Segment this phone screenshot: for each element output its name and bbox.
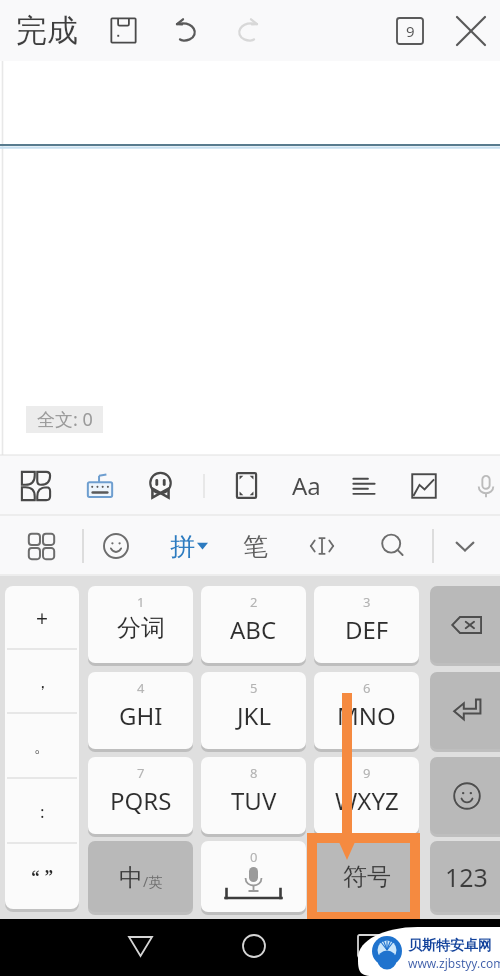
button[interactable]: 2	[201, 586, 306, 663]
button[interactable]: Redo	[226, 0, 270, 61]
button[interactable]: 4	[88, 672, 193, 749]
button[interactable]: Align	[342, 455, 386, 516]
staticText: 123	[445, 860, 488, 894]
button[interactable]: Emoji	[430, 757, 500, 834]
button[interactable]: 中	[88, 841, 193, 912]
button[interactable]: 6	[314, 672, 419, 749]
button[interactable]: 全文: 0	[26, 406, 103, 433]
staticText: 6	[363, 679, 371, 697]
button[interactable]: 符号	[314, 841, 419, 912]
button[interactable]: 。	[5, 714, 79, 779]
staticText: PQRS	[110, 784, 172, 817]
staticText: 符号	[343, 862, 391, 892]
staticText: 中	[119, 863, 143, 893]
staticText: 分词	[117, 613, 165, 643]
staticText: ABC	[230, 613, 277, 646]
staticText: www.zjbstyy.com	[408, 955, 500, 971]
button[interactable]: 7	[88, 757, 193, 834]
button[interactable]: 笔	[238, 516, 272, 576]
staticText: 贝斯特安卓网	[408, 937, 492, 955]
staticText: +	[36, 604, 49, 633]
staticText: 3	[363, 593, 371, 611]
button[interactable]: 123	[430, 841, 500, 912]
button[interactable]: Panel	[19, 516, 63, 576]
button[interactable]: 1	[88, 586, 193, 663]
button[interactable]: Font	[286, 455, 326, 516]
button[interactable]: Word count	[388, 0, 432, 61]
staticText: TUV	[231, 784, 277, 817]
button[interactable]: Undo	[164, 0, 208, 61]
staticText: 笔	[243, 531, 268, 562]
button[interactable]: Space	[201, 841, 306, 912]
button[interactable]: 8	[201, 757, 306, 834]
staticText: 9	[363, 764, 371, 782]
button[interactable]: 3	[314, 586, 419, 663]
staticText: WXYZ	[335, 784, 399, 817]
staticText: ，	[34, 672, 51, 693]
button[interactable]: Hide keyboard	[443, 516, 487, 576]
staticText: 2	[250, 593, 258, 611]
button[interactable]: 5	[201, 672, 306, 749]
button[interactable]: Home	[232, 924, 276, 968]
staticText: GHI	[119, 699, 163, 732]
button[interactable]: Emoji	[94, 516, 138, 576]
staticText: 5	[250, 679, 258, 697]
button[interactable]: Keyboard	[78, 455, 122, 516]
button[interactable]: Save	[101, 0, 145, 61]
button[interactable]: Enter	[430, 672, 500, 749]
button[interactable]: :	[5, 779, 79, 844]
staticText: :	[40, 800, 45, 823]
button[interactable]: Apps	[14, 455, 58, 516]
staticText: /英	[143, 872, 163, 891]
staticText: Aa	[292, 469, 321, 502]
staticText: 9	[406, 21, 415, 41]
staticText: 8	[250, 764, 258, 782]
button[interactable]: Search	[371, 516, 415, 576]
button[interactable]: 9	[314, 757, 419, 834]
staticText: 7	[137, 764, 145, 782]
button[interactable]: Close	[449, 0, 493, 61]
button[interactable]: Backspace	[430, 586, 500, 663]
staticText: JKL	[237, 699, 271, 732]
button[interactable]: Cursor move	[300, 516, 344, 576]
staticText: 完成	[16, 11, 78, 50]
button[interactable]: “ ”	[5, 844, 79, 909]
button[interactable]: Voice	[464, 455, 500, 516]
staticText: MNO	[337, 699, 396, 732]
button[interactable]: Emoticon	[138, 455, 182, 516]
button[interactable]: 拼	[170, 516, 208, 576]
staticText: DEF	[345, 613, 389, 646]
button[interactable]: Image	[402, 455, 446, 516]
staticText: 拼	[170, 531, 195, 562]
button[interactable]: Back	[118, 924, 162, 968]
staticText: 全文: 0	[37, 407, 93, 432]
button[interactable]: ，	[5, 650, 79, 714]
staticText: 4	[137, 679, 145, 697]
staticText: 0	[250, 848, 258, 866]
button[interactable]: +	[5, 586, 79, 650]
staticText: “ ”	[31, 864, 54, 889]
staticText: 1	[137, 593, 145, 611]
button[interactable]: 完成	[16, 0, 78, 61]
button[interactable]: Select region	[224, 455, 268, 516]
button[interactable]: Recents	[347, 924, 391, 968]
staticText: 。	[34, 736, 51, 757]
